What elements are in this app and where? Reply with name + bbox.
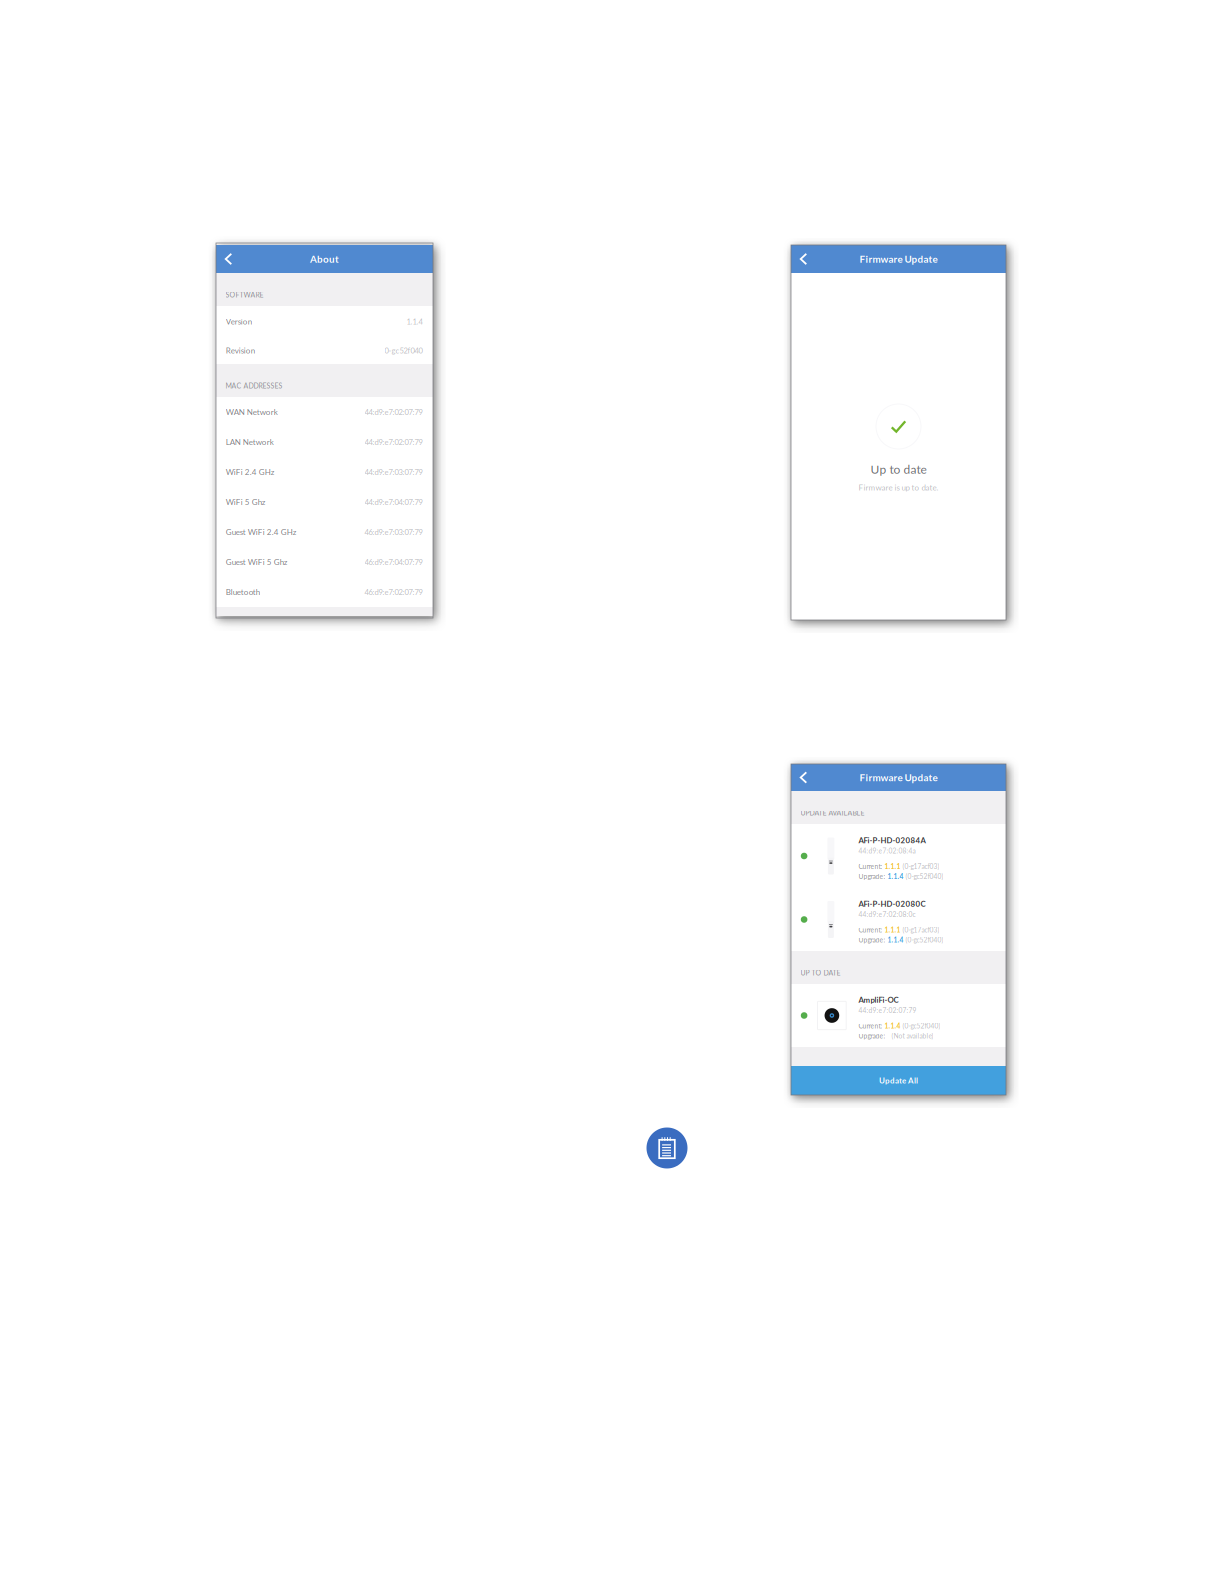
staticText: 0-gc52f040: [384, 346, 422, 355]
staticText: Current:: [858, 862, 884, 870]
staticText: 44:d9:e7:04:07:79: [364, 497, 422, 507]
staticText: Version: [226, 317, 252, 326]
button[interactable]: Guest WiFi 2.4 GHz: [216, 517, 433, 547]
staticText: 1.1.4: [887, 936, 903, 944]
staticText: Guest WiFi 2.4 GHz: [226, 527, 297, 537]
staticText: 44:d9:e7:02:07:79: [858, 1006, 916, 1014]
button[interactable]: AmpliFi-OC: [791, 984, 1006, 1047]
button[interactable]: Bluetooth: [216, 577, 433, 607]
button[interactable]: Revision: [216, 337, 433, 364]
staticText: 44:d9:e7:02:08:0c: [858, 910, 915, 918]
staticText: 44:d9:e7:02:07:79: [364, 407, 422, 417]
button[interactable]: Back: [793, 245, 813, 273]
button[interactable]: AFi-P-HD-02084A: [791, 824, 1006, 888]
staticText: SOFTWARE: [225, 291, 263, 299]
staticText: Bluetooth: [226, 587, 260, 597]
staticText: 1.1.4: [406, 317, 422, 326]
staticText: (0-gc52f040): [903, 872, 943, 880]
staticText: Up to date: [870, 462, 926, 476]
staticText: (0-g17acf03): [900, 862, 939, 870]
button[interactable]: LAN Network: [216, 427, 433, 457]
button[interactable]: Guest WiFi 5 Ghz: [216, 547, 433, 577]
button[interactable]: AFi-P-HD-02080C: [791, 888, 1006, 951]
staticText: WiFi 2.4 GHz: [226, 467, 275, 477]
staticText: Current:: [858, 926, 884, 934]
staticText: Firmware is up to date.: [858, 482, 938, 492]
staticText: 1.1.4: [884, 1022, 900, 1030]
staticText: (0-gc52f040): [900, 1022, 940, 1030]
staticText: LAN Network: [226, 437, 274, 447]
staticText: Revision: [226, 346, 255, 355]
staticText: UPDATE AVAILABLE: [800, 809, 864, 817]
staticText: (0-g17acf03): [900, 926, 939, 934]
staticText: Guest WiFi 5 Ghz: [226, 557, 288, 567]
staticText: AFi-P-HD-02084A: [858, 836, 925, 845]
button[interactable]: WiFi 5 Ghz: [216, 487, 433, 517]
button[interactable]: Release notes: [646, 1127, 687, 1168]
staticText: Firmware Update: [859, 253, 937, 265]
button[interactable]: WiFi 2.4 GHz: [216, 457, 433, 487]
staticText: (0-gc52f040): [903, 936, 943, 944]
staticText: 1.1.1: [884, 926, 900, 934]
staticText: Update All: [879, 1076, 918, 1085]
button[interactable]: WAN Network: [216, 397, 433, 427]
button[interactable]: Back: [793, 764, 813, 791]
staticText: 44:d9:e7:03:07:79: [364, 467, 422, 477]
staticText: Upgrade:: [858, 872, 887, 880]
staticText: 46:d9:e7:04:07:79: [364, 557, 422, 567]
button[interactable]: Version: [216, 306, 433, 337]
staticText: UP TO DATE: [800, 969, 840, 977]
staticText: (Not available): [887, 1032, 933, 1040]
button[interactable]: Update All: [791, 1066, 1006, 1095]
staticText: Current:: [858, 1022, 884, 1030]
staticText: Upgrade:: [858, 936, 887, 944]
staticText: Upgrade:: [858, 1032, 887, 1040]
staticText: WAN Network: [226, 407, 278, 417]
staticText: Firmware Update: [859, 772, 937, 783]
staticText: AFi-P-HD-02080C: [858, 899, 925, 908]
staticText: 44:d9:e7:02:08:4a: [858, 847, 915, 855]
staticText: AmpliFi-OC: [858, 995, 898, 1004]
staticText: 46:d9:e7:03:07:79: [364, 527, 422, 537]
staticText: 1.1.1: [884, 862, 900, 870]
staticText: WiFi 5 Ghz: [226, 497, 266, 507]
staticText: 44:d9:e7:02:07:79: [364, 437, 422, 447]
staticText: About: [310, 253, 339, 265]
button[interactable]: Back: [218, 245, 238, 273]
staticText: MAC ADDRESSES: [225, 382, 282, 390]
staticText: 46:d9:e7:02:07:79: [364, 587, 422, 597]
staticText: 1.1.4: [887, 872, 903, 880]
